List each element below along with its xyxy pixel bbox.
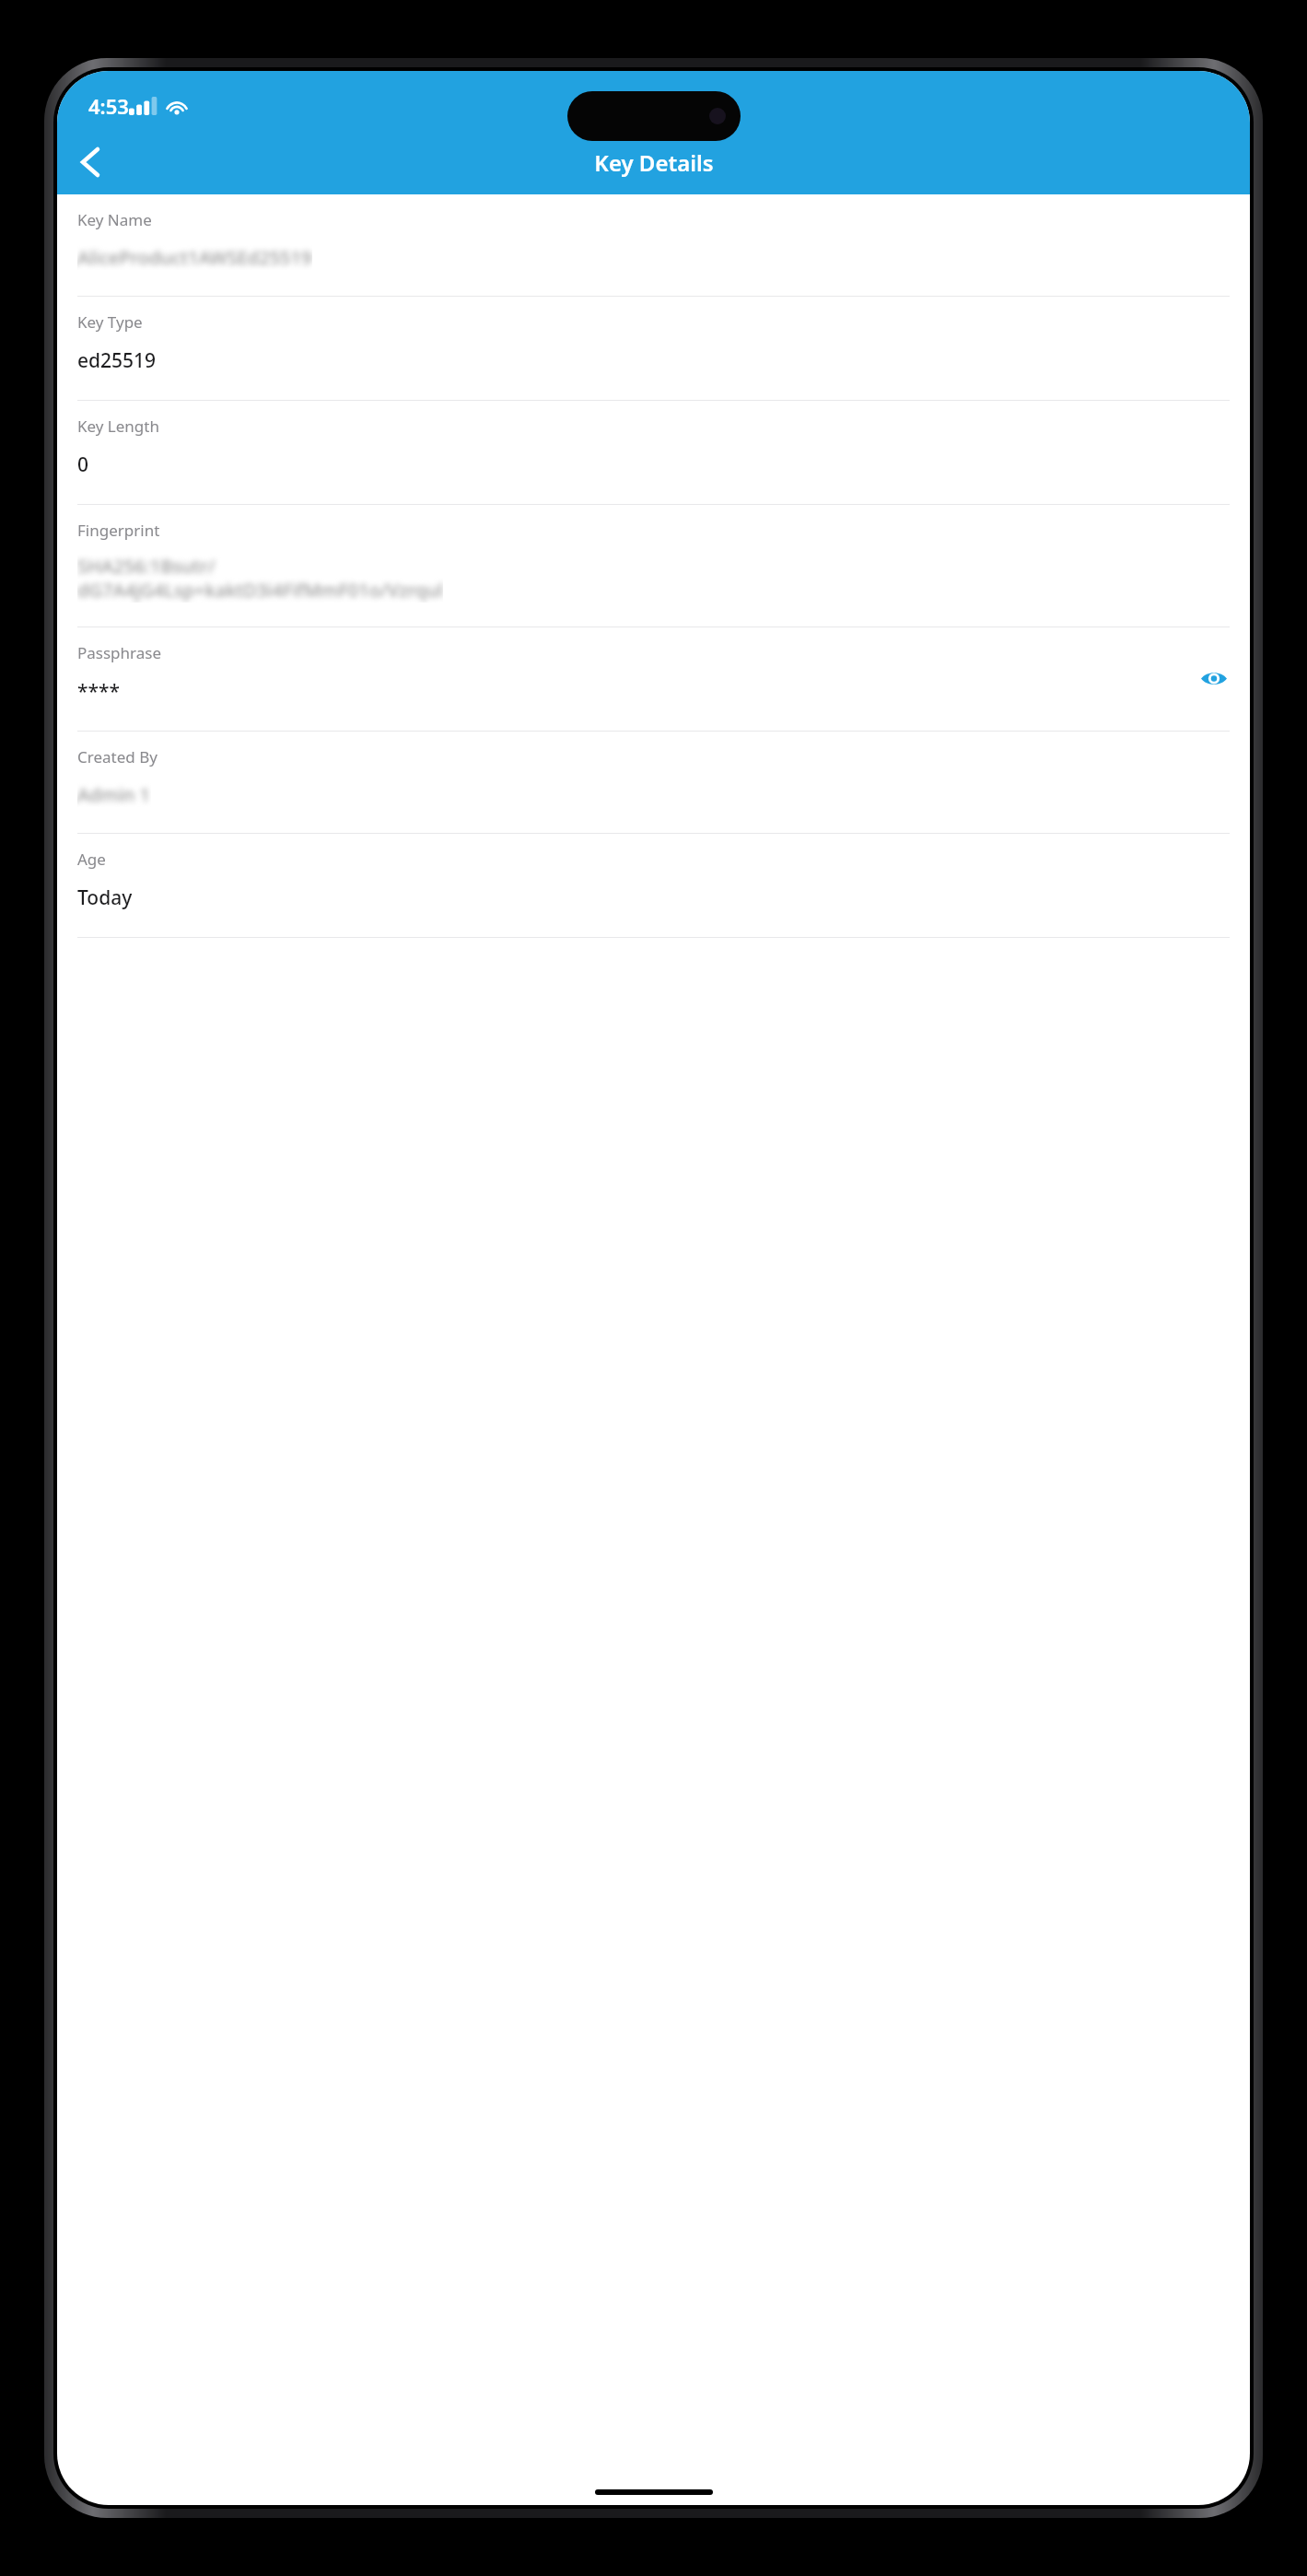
staticText: Created By bbox=[77, 746, 158, 767]
staticText: Passphrase bbox=[77, 642, 162, 663]
staticText: Age bbox=[77, 849, 106, 870]
button[interactable]: Created By bbox=[57, 732, 1250, 834]
staticText: Key Length bbox=[77, 416, 159, 437]
staticText: Key Name bbox=[77, 209, 152, 230]
button[interactable]: Fingerprint bbox=[57, 505, 1250, 627]
staticText: AliceProduct1AWSEd25519 bbox=[77, 245, 312, 270]
button[interactable]: Show passphrase bbox=[1198, 662, 1230, 694]
staticText: 4:53 bbox=[88, 92, 129, 120]
button[interactable]: Key Type bbox=[57, 297, 1250, 401]
staticText: Key Type bbox=[77, 311, 143, 333]
staticText: 76 bbox=[700, 98, 714, 114]
staticText: Today bbox=[77, 884, 133, 911]
button[interactable]: Age bbox=[57, 834, 1250, 938]
button[interactable]: Key Length bbox=[57, 401, 1250, 505]
staticText: SHA256:1Bsutr/ dG7A4jG4Lsp+kaktD3i4FifMm… bbox=[77, 554, 443, 603]
staticText: Fingerprint bbox=[77, 520, 160, 541]
staticText: ed25519 bbox=[77, 347, 157, 374]
staticText: 0 bbox=[77, 451, 89, 478]
staticText: **** bbox=[77, 678, 121, 705]
button[interactable]: Passphrase bbox=[57, 627, 1250, 732]
button[interactable]: Key Name bbox=[57, 194, 1250, 297]
button[interactable]: Back bbox=[66, 138, 114, 186]
staticText: Admin 1 bbox=[77, 782, 151, 807]
staticText: Key Details bbox=[594, 147, 714, 178]
